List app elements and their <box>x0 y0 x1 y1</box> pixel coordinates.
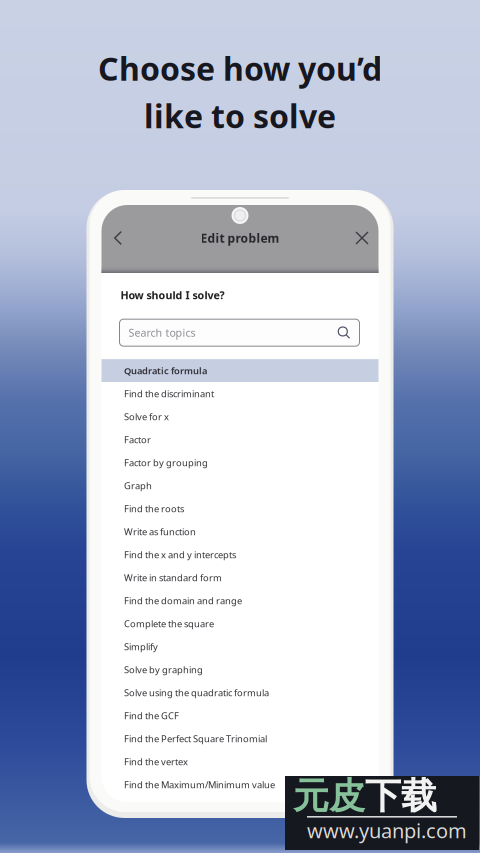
staticText: Complete the square <box>124 617 214 630</box>
staticText: Quadratic formula <box>124 364 207 377</box>
button[interactable]: Graph <box>101 474 378 497</box>
staticText: Write in standard form <box>124 571 222 584</box>
staticText: Graph <box>124 479 152 492</box>
staticText: Find the GCF <box>124 709 179 722</box>
button[interactable]: Close <box>348 224 376 252</box>
button[interactable]: Back <box>104 224 132 252</box>
button[interactable]: Solve for x <box>101 405 378 428</box>
button[interactable]: Find the x and y intercepts <box>101 543 378 566</box>
staticText: Find the x and y intercepts <box>124 548 236 561</box>
staticText: Find the Perfect Square Trinomial <box>124 732 267 745</box>
button[interactable]: Solve by graphing <box>101 658 378 681</box>
staticText: Edit problem <box>200 230 279 246</box>
button[interactable]: Complete the square <box>101 612 378 635</box>
button[interactable]: Find the Perfect Square Trinomial <box>101 727 378 750</box>
staticText: Factor <box>124 433 151 446</box>
staticText: Find the vertex <box>124 755 188 768</box>
button[interactable]: Find the vertex <box>101 750 378 773</box>
button[interactable]: Write in standard form <box>101 566 378 589</box>
staticText: like to solve <box>144 94 336 137</box>
staticText: Solve by graphing <box>124 663 203 676</box>
button[interactable]: Find the Maximum/Minimum value <box>101 773 378 796</box>
staticText: Find the domain and range <box>124 594 242 607</box>
button[interactable]: Quadratic formula <box>101 359 378 382</box>
staticText: Choose how you’d <box>98 47 382 89</box>
button[interactable]: Find the domain and range <box>101 589 378 612</box>
staticText: Solve for x <box>124 410 169 423</box>
staticText: Simplify <box>124 640 158 653</box>
button[interactable]: Factor by grouping <box>101 451 378 474</box>
staticText: Write as function <box>124 525 196 538</box>
button[interactable]: Simplify <box>101 635 378 658</box>
button[interactable]: Factor <box>101 428 378 451</box>
button[interactable]: Find the GCF <box>101 704 378 727</box>
staticText: Find the roots <box>124 502 184 515</box>
staticText: 元皮 <box>293 774 365 818</box>
button[interactable]: Find the roots <box>101 497 378 520</box>
button[interactable]: Solve using the quadratic formula <box>101 681 378 704</box>
staticText: Find the discriminant <box>124 387 214 400</box>
staticText: How should I solve? <box>120 288 224 302</box>
staticText: www.yuanpi.com <box>307 817 467 844</box>
button[interactable]: Write as function <box>101 520 378 543</box>
staticText: Search topics <box>128 326 195 340</box>
staticText: 下载 <box>365 774 437 818</box>
button[interactable]: Find the discriminant <box>101 382 378 405</box>
staticText: Find the Maximum/Minimum value <box>124 778 275 791</box>
staticText: Factor by grouping <box>124 456 208 469</box>
staticText: Solve using the quadratic formula <box>124 686 269 699</box>
